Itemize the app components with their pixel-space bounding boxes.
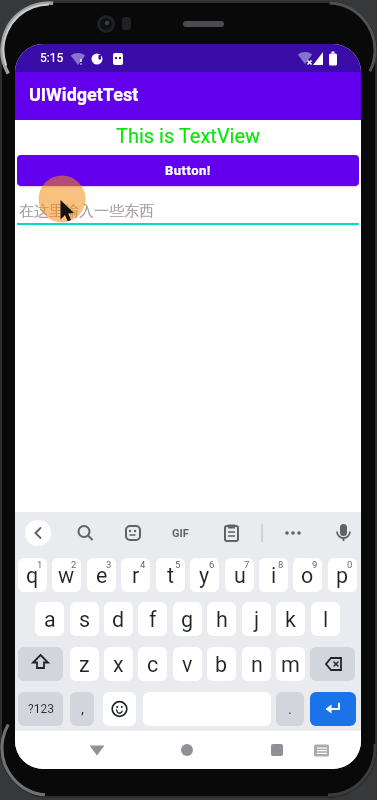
button[interactable]: k	[276, 602, 305, 636]
button[interactable]: d	[104, 602, 133, 636]
button[interactable]	[165, 731, 209, 769]
staticText: 6	[209, 559, 215, 570]
button[interactable]	[310, 647, 355, 681]
staticText: ,	[81, 700, 84, 718]
button[interactable]	[307, 731, 337, 769]
staticText: GIF	[172, 527, 189, 540]
button[interactable]: t	[156, 558, 185, 592]
button[interactable]: p	[328, 558, 357, 592]
button[interactable]: ?123	[18, 692, 63, 726]
button[interactable]: m	[276, 647, 305, 681]
staticText: k	[285, 607, 296, 632]
staticText: z	[79, 652, 90, 677]
button[interactable]: s	[70, 602, 99, 636]
button[interactable]: o	[293, 558, 322, 592]
button[interactable]	[310, 692, 356, 726]
button[interactable]	[217, 519, 245, 547]
button[interactable]: j	[242, 602, 271, 636]
staticText: 8	[278, 559, 284, 570]
button[interactable]: h	[207, 602, 236, 636]
staticText: 0	[347, 559, 353, 570]
staticText: This is TextView	[116, 124, 261, 147]
staticText: 7	[244, 559, 250, 570]
button[interactable]	[75, 731, 119, 769]
staticText: d	[112, 607, 125, 632]
button[interactable]	[17, 194, 359, 225]
staticText: t	[167, 563, 175, 588]
staticText: g	[181, 607, 194, 632]
button[interactable]: u	[225, 558, 254, 592]
staticText: h	[216, 607, 228, 632]
staticText: x	[113, 652, 124, 677]
button[interactable]: i	[259, 558, 288, 592]
button[interactable]: q	[18, 558, 47, 592]
button[interactable]: w	[52, 558, 81, 592]
button[interactable]: e	[87, 558, 116, 592]
staticText: n	[251, 652, 263, 677]
staticText: y	[199, 563, 210, 588]
button[interactable]: r	[121, 558, 150, 592]
button[interactable]: y	[190, 558, 219, 592]
button[interactable]: b	[207, 647, 236, 681]
staticText: 9	[312, 559, 318, 570]
button[interactable]: l	[311, 602, 340, 636]
staticText: v	[182, 652, 193, 677]
button[interactable]: f	[138, 602, 167, 636]
staticText: ?123	[28, 702, 54, 716]
button[interactable]: n	[242, 647, 271, 681]
staticText: UIWidgetTest	[29, 84, 139, 105]
button[interactable]	[24, 519, 52, 547]
staticText: Button!	[165, 163, 211, 178]
staticText: c	[147, 652, 159, 677]
button[interactable]	[119, 519, 147, 547]
staticText: 5	[175, 559, 181, 570]
staticText: p	[336, 563, 349, 588]
staticText: 4	[140, 559, 146, 570]
button[interactable]: Button!	[17, 155, 359, 186]
staticText: 3	[106, 559, 112, 570]
button[interactable]: z	[70, 647, 99, 681]
staticText: e	[96, 563, 108, 588]
button[interactable]: c	[138, 647, 167, 681]
staticText: 2	[71, 559, 77, 570]
staticText: i	[271, 563, 277, 588]
staticText: l	[323, 607, 329, 632]
button[interactable]: g	[173, 602, 202, 636]
staticText: a	[44, 607, 56, 632]
staticText: s	[79, 607, 91, 632]
staticText: 1	[37, 559, 43, 570]
staticText: .	[288, 700, 292, 718]
staticText: q	[26, 563, 39, 588]
button[interactable]: ,	[70, 692, 94, 726]
staticText: b	[215, 652, 228, 677]
staticText: j	[254, 607, 260, 632]
staticText: w	[58, 563, 75, 588]
button[interactable]	[279, 519, 307, 547]
button[interactable]: a	[35, 602, 64, 636]
button[interactable]: x	[104, 647, 133, 681]
button[interactable]	[255, 731, 299, 769]
button[interactable]	[18, 647, 63, 681]
staticText: m	[281, 652, 300, 677]
button[interactable]	[167, 519, 195, 547]
button[interactable]	[70, 519, 98, 547]
staticText: r	[132, 563, 140, 588]
staticText: 5:15	[40, 51, 64, 65]
button[interactable]	[330, 519, 358, 547]
staticText: o	[301, 563, 314, 588]
button[interactable]	[103, 692, 136, 726]
staticText: u	[234, 563, 246, 588]
staticText: 在这里输入一些东西	[19, 202, 154, 221]
staticText: f	[149, 607, 157, 632]
button[interactable]: v	[173, 647, 202, 681]
button[interactable]: .	[276, 692, 304, 726]
